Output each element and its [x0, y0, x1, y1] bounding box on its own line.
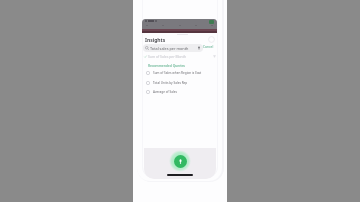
staticText: Insights — [145, 37, 166, 44]
staticText: Total sales per month — [150, 46, 189, 51]
button[interactable]: Cancel — [203, 44, 214, 48]
button[interactable]: Total sales per month — [143, 44, 203, 52]
other: Filter — [213, 55, 216, 58]
button[interactable]: Total Units by Sales Rep — [146, 79, 216, 86]
staticText: Average of Sales — [153, 90, 177, 94]
staticText: Recommended Queries — [148, 63, 185, 68]
button[interactable]: Profile — [208, 36, 215, 43]
staticText: Sum of Sales per Month — [148, 54, 186, 59]
button[interactable]: Microphone — [174, 155, 187, 168]
staticText: Total Units by Sales Rep — [153, 81, 188, 85]
button[interactable]: Sum of Sales when Region is East — [146, 69, 216, 76]
button[interactable]: Average of Sales — [146, 88, 216, 95]
other: Voice search — [197, 46, 201, 50]
staticText: Sum of Sales when Region is East — [153, 71, 202, 75]
button[interactable]: Sum of Sales per Month — [144, 54, 216, 59]
